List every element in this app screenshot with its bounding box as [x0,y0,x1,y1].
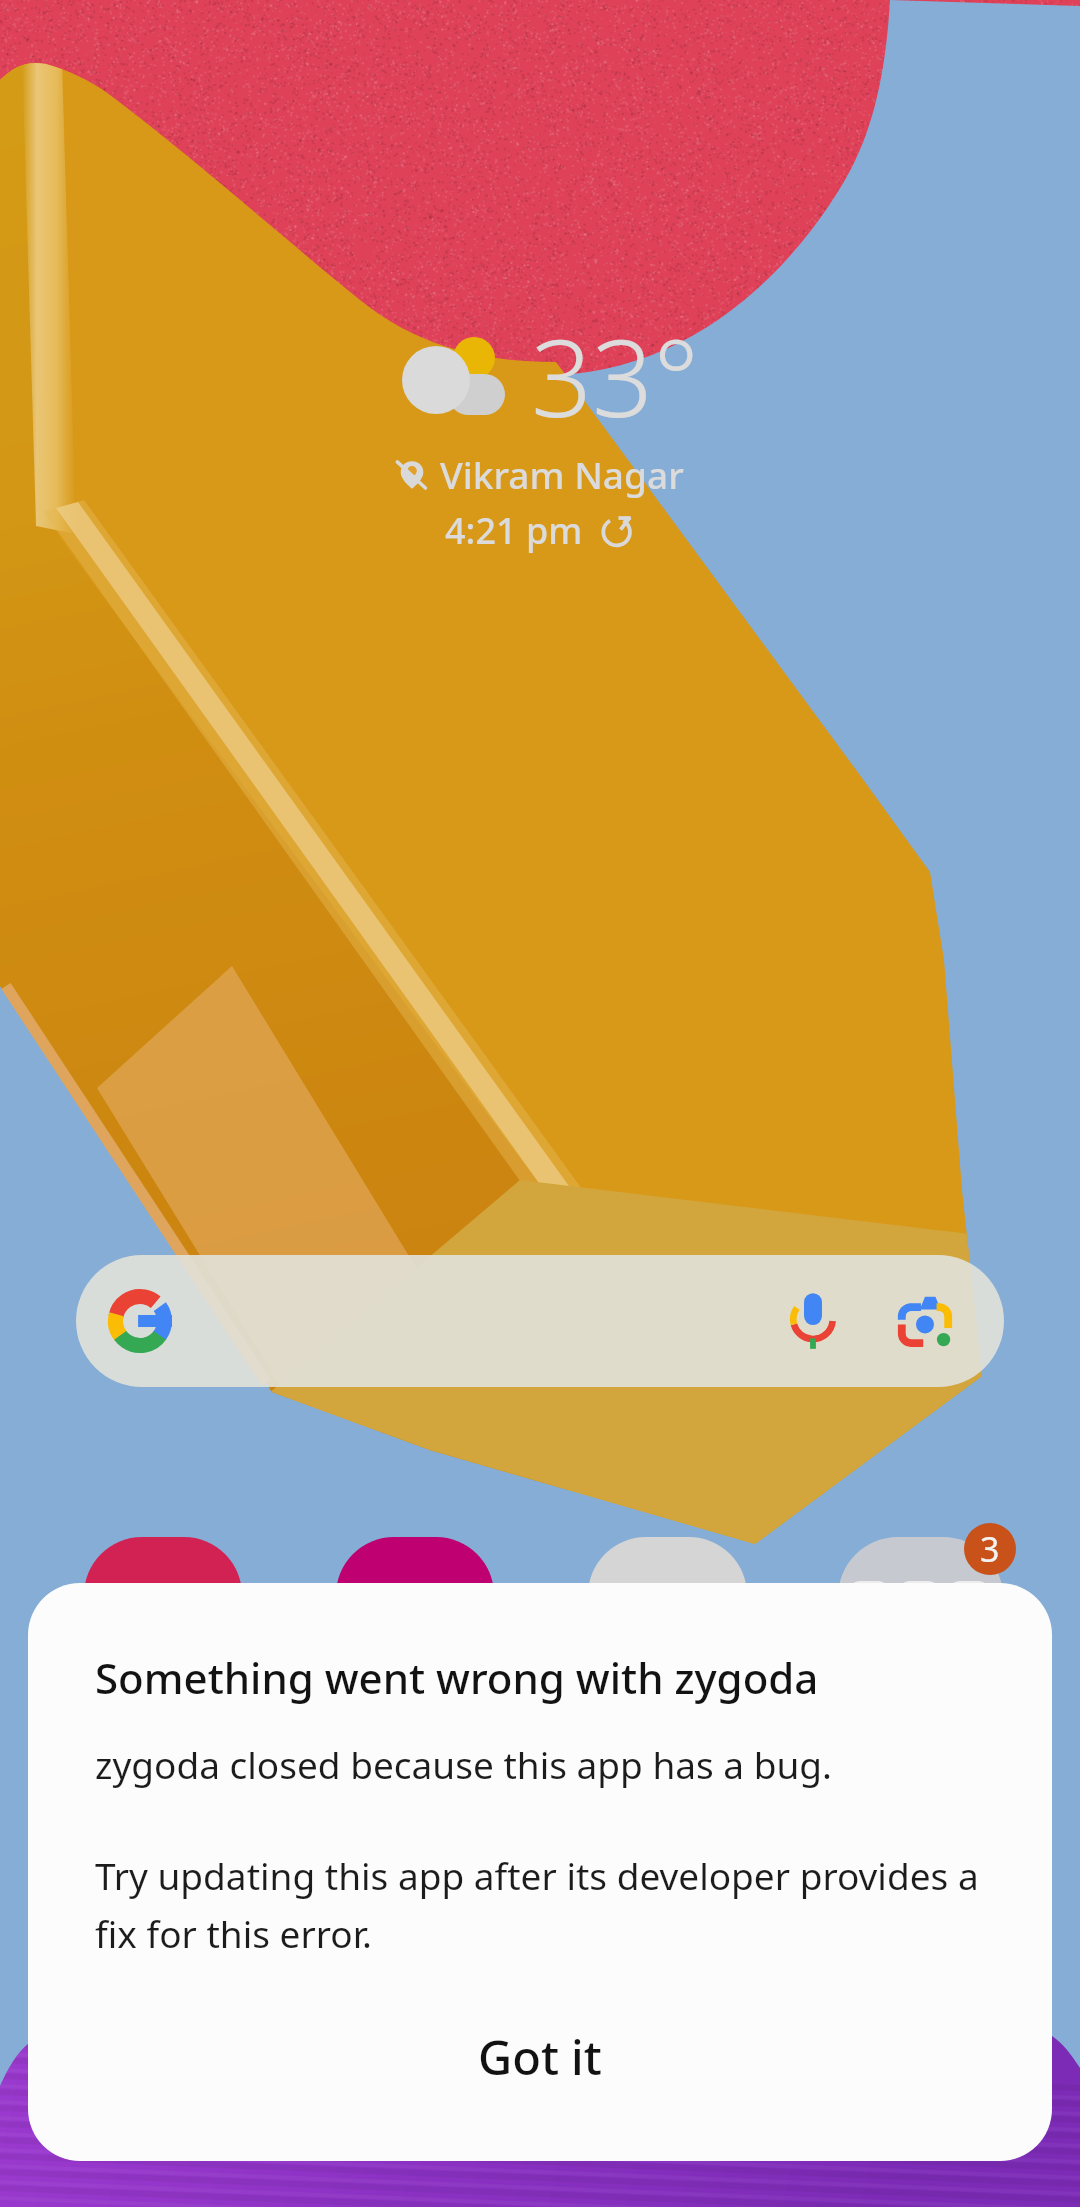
staticText: zygoda closed because this app has a bug… [95,1739,833,1789]
button[interactable]: Photos app [84,1537,242,1695]
staticText: Got it [478,2025,602,2089]
button[interactable]: Got it [28,1998,1052,2116]
staticText: Try updating this app after its develope… [95,1850,996,1958]
button[interactable]: Google folder [838,1537,1003,1702]
button[interactable]: Play Store [588,1537,747,1696]
staticText: 33° [531,303,699,449]
button[interactable]: Contacts [336,1537,494,1695]
button[interactable]: Google search [76,1255,1004,1387]
staticText: 3 [980,1526,1000,1572]
staticText: Vikram Nagar [440,449,684,499]
staticText: Something went wrong with zygoda [95,1649,819,1706]
staticText: 4:21 pm [445,506,583,555]
